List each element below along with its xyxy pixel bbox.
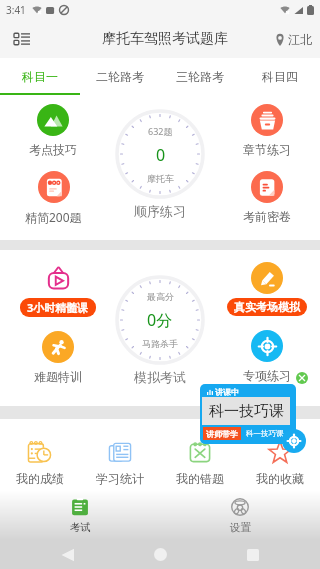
- staticText: 考点技巧: [29, 142, 77, 157]
- staticText: 0分: [147, 309, 173, 331]
- button[interactable]: 科一技巧课: [200, 384, 296, 444]
- staticText: 我的收藏: [256, 471, 304, 486]
- button[interactable]: 我的错题: [160, 419, 240, 490]
- staticText: 科目一: [22, 69, 58, 84]
- button[interactable]: 章节练习: [243, 104, 291, 157]
- staticText: 难题特训: [34, 369, 82, 384]
- button[interactable]: 3小时精髓课: [20, 262, 96, 317]
- button[interactable]: 考试: [0, 490, 160, 540]
- button[interactable]: 考点技巧: [29, 104, 77, 157]
- staticText: 讲课中: [215, 387, 239, 397]
- staticText: 专项练习: [243, 368, 291, 383]
- button[interactable]: 我的成绩: [0, 419, 80, 490]
- button[interactable]: 二轮路考: [80, 58, 160, 95]
- staticText: 设置: [230, 521, 251, 534]
- staticText: 马路杀手: [142, 338, 178, 349]
- button[interactable]: 632题: [115, 109, 205, 219]
- button[interactable]: 难题特训: [34, 331, 82, 384]
- staticText: 顺序练习: [134, 203, 186, 219]
- staticText: 真实考场模拟: [234, 300, 300, 314]
- staticText: 3:41: [6, 3, 26, 17]
- staticText: 我的错题: [176, 471, 224, 486]
- staticText: 学习统计: [96, 471, 144, 486]
- staticText: 632题: [148, 125, 173, 137]
- button[interactable]: 科目一: [0, 58, 80, 95]
- button[interactable]: 专项练习: [243, 330, 291, 383]
- button[interactable]: Menu: [6, 23, 38, 55]
- button[interactable]: 考前密卷: [243, 171, 291, 224]
- staticText: 科目四: [262, 69, 298, 84]
- button[interactable]: 三轮路考: [160, 58, 240, 95]
- button[interactable]: 我的收藏: [240, 419, 320, 490]
- staticText: 科一技巧课: [209, 402, 284, 421]
- button[interactable]: Home: [145, 540, 175, 569]
- staticText: 我的成绩: [16, 471, 64, 486]
- button[interactable]: 江北: [275, 32, 320, 47]
- staticText: 3小时精髓课: [27, 300, 89, 315]
- button[interactable]: 科目四: [240, 58, 320, 95]
- staticText: 最高分: [147, 291, 174, 302]
- button[interactable]: Close: [296, 372, 308, 384]
- staticText: 考试: [70, 521, 91, 534]
- staticText: 模拟考试: [134, 369, 186, 385]
- button[interactable]: 学习统计: [80, 419, 160, 490]
- button[interactable]: 真实考场模拟: [227, 262, 307, 316]
- button[interactable]: Recents: [238, 540, 268, 569]
- button[interactable]: Play: [282, 429, 306, 453]
- staticText: 科一技巧课: [246, 429, 284, 438]
- staticText: 三轮路考: [176, 69, 224, 84]
- button[interactable]: 设置: [160, 490, 320, 540]
- staticText: 江北: [288, 32, 312, 47]
- staticText: 章节练习: [243, 142, 291, 157]
- button[interactable]: 最高分: [115, 275, 205, 385]
- button[interactable]: 精简200题: [25, 171, 82, 225]
- staticText: 讲师带学: [206, 429, 238, 439]
- staticText: 精简200题: [25, 209, 82, 225]
- button[interactable]: Back: [52, 540, 82, 569]
- staticText: 摩托车驾照考试题库: [102, 30, 228, 48]
- staticText: 考前密卷: [243, 209, 291, 224]
- staticText: 摩托车: [147, 173, 174, 184]
- staticText: 0: [156, 144, 166, 166]
- staticText: 二轮路考: [96, 69, 144, 84]
